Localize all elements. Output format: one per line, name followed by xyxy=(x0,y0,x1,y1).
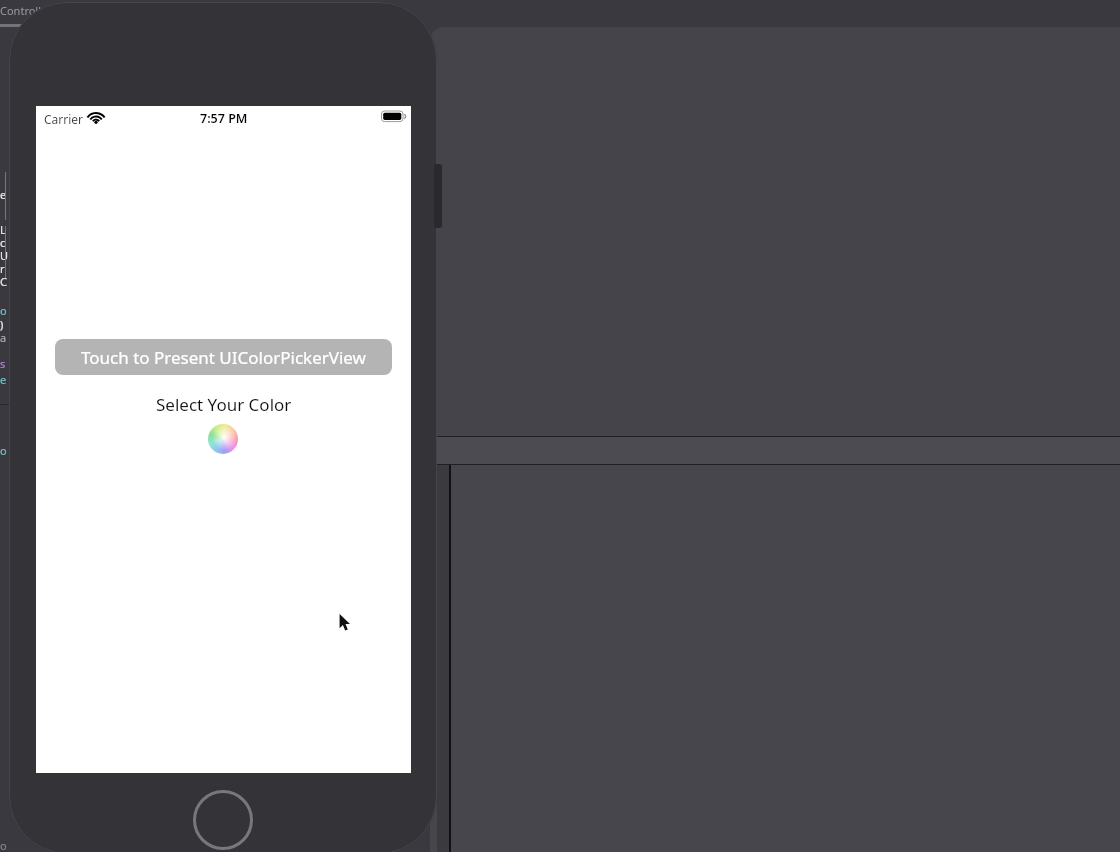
staticText: U xyxy=(0,248,9,263)
staticText: r xyxy=(0,261,5,276)
staticText: 7:57 PM xyxy=(200,110,248,126)
staticText: e xyxy=(0,187,7,202)
staticText: a xyxy=(0,330,7,345)
staticText: ) xyxy=(0,317,4,332)
staticText: L xyxy=(0,222,6,237)
button[interactable]: Touch to Present UIColorPickerView xyxy=(55,339,392,375)
staticText: c xyxy=(0,235,6,250)
staticText: e xyxy=(0,372,7,387)
staticText: Controll xyxy=(0,3,42,18)
staticText: Carrier xyxy=(44,111,84,127)
staticText: C xyxy=(0,274,7,289)
staticText: Touch to Present UIColorPickerView xyxy=(81,346,366,369)
staticText: s xyxy=(0,356,6,371)
staticText: o xyxy=(0,838,7,852)
staticText: o xyxy=(0,443,7,458)
staticText: o xyxy=(0,303,7,318)
staticText: Select Your Color xyxy=(156,393,292,415)
